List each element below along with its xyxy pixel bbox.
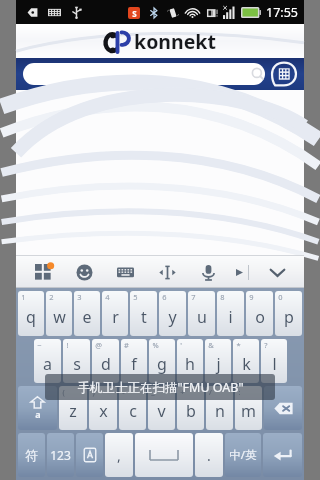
button[interactable]: 2 — [46, 291, 72, 336]
staticText: 3 — [77, 292, 82, 302]
staticText: s — [73, 353, 81, 375]
button[interactable]: - — [119, 386, 146, 430]
staticText: a — [43, 353, 52, 375]
staticText: & — [208, 340, 214, 350]
button[interactable]: + — [177, 386, 204, 430]
staticText: y — [168, 306, 177, 328]
staticText: g — [157, 353, 167, 375]
staticText: 123 — [50, 447, 71, 463]
button[interactable] — [23, 63, 265, 85]
button[interactable]: ( — [59, 386, 87, 430]
staticText: @ — [95, 340, 102, 350]
button[interactable]: Shift — [18, 386, 57, 430]
staticText: ? — [264, 340, 268, 350]
staticText: - — [122, 387, 125, 397]
staticText: r — [112, 306, 119, 328]
button[interactable]: 123 — [47, 433, 74, 477]
button[interactable]: ? — [261, 339, 287, 383]
button[interactable]: . — [195, 433, 223, 477]
staticText: p — [284, 306, 294, 328]
staticText: 7 — [191, 292, 196, 302]
button[interactable]: Move cursor — [154, 259, 180, 285]
staticText: u — [197, 306, 207, 328]
button[interactable]: 6 — [159, 291, 186, 336]
staticText: b — [186, 400, 196, 422]
staticText: x — [99, 400, 108, 422]
staticText: . — [207, 446, 211, 465]
staticText: 5 — [133, 292, 138, 302]
button[interactable]: ! — [63, 339, 90, 383]
button[interactable]: ) — [89, 386, 117, 430]
staticText: 8 — [220, 292, 225, 302]
button[interactable]: Emoji — [71, 259, 97, 285]
staticText: ~ — [37, 340, 42, 350]
button[interactable]: 9 — [246, 291, 273, 336]
button[interactable]: Space — [135, 433, 193, 477]
staticText: a — [35, 408, 41, 420]
staticText: m — [241, 400, 256, 422]
staticText: c — [129, 400, 137, 422]
staticText: 6 — [162, 292, 167, 302]
staticText: 符 — [25, 447, 38, 463]
button[interactable]: & — [205, 339, 231, 383]
button[interactable]: # — [121, 339, 147, 383]
button[interactable]: ~ — [34, 339, 61, 383]
staticText: S — [132, 8, 137, 19]
staticText: v — [157, 400, 166, 422]
staticText: ! — [66, 340, 69, 350]
button[interactable]: _ — [148, 386, 175, 430]
button[interactable]: 5 — [130, 291, 157, 336]
button[interactable]: Backspace — [264, 386, 302, 430]
button[interactable]: % — [149, 339, 175, 383]
staticText: % — [152, 340, 159, 350]
staticText: 17:55 — [266, 4, 298, 21]
button[interactable]: Enter — [263, 433, 302, 477]
button[interactable]: / — [206, 386, 233, 430]
staticText: ' — [180, 340, 182, 350]
staticText: w — [53, 306, 66, 328]
button[interactable]: 8 — [217, 291, 244, 336]
button[interactable]: Keyboard — [112, 259, 138, 285]
button[interactable]: 0 — [275, 291, 302, 336]
button[interactable]: 4 — [102, 291, 128, 336]
button[interactable]: 7 — [188, 291, 215, 336]
staticText: , — [117, 446, 121, 465]
staticText: d — [101, 353, 111, 375]
staticText: * — [236, 340, 241, 350]
staticText: 手机卫士正在扫描"FMU OAB" — [77, 379, 244, 396]
button[interactable]: 1 — [18, 291, 44, 336]
staticText: ( — [62, 387, 65, 397]
staticText: 9 — [249, 292, 254, 302]
staticText: o — [255, 306, 265, 328]
button[interactable]: * — [233, 339, 259, 383]
button[interactable]: Hide keyboard — [264, 259, 290, 285]
staticText: 4 — [105, 292, 110, 302]
staticText: h — [185, 353, 195, 375]
staticText: # — [124, 340, 129, 350]
staticText: 2 — [49, 292, 54, 302]
staticText: _ — [151, 387, 155, 397]
button[interactable]: 符 — [18, 433, 45, 477]
button[interactable]: ' — [177, 339, 203, 383]
button[interactable]: Apps — [30, 259, 56, 285]
button[interactable]: @ — [92, 339, 119, 383]
staticText: + — [180, 387, 185, 397]
staticText: 0 — [278, 292, 283, 302]
staticText: konnekt — [134, 28, 216, 55]
staticText: e — [82, 306, 92, 328]
staticText: n — [215, 400, 225, 422]
button[interactable]: 3 — [74, 291, 100, 336]
staticText: l — [272, 353, 277, 375]
button[interactable]: , — [105, 433, 133, 477]
staticText: / — [209, 387, 212, 397]
staticText: ) — [92, 387, 95, 397]
button[interactable]: Voice input — [195, 259, 221, 285]
staticText: k — [242, 353, 251, 375]
button[interactable]: 中/英 — [225, 433, 261, 477]
staticText: t — [141, 306, 147, 328]
button[interactable]: : — [235, 386, 262, 430]
staticText: i — [228, 306, 233, 328]
button[interactable]: Dial pad — [271, 61, 297, 87]
button[interactable]: Input method — [76, 433, 103, 477]
staticText: 中/英 — [229, 447, 257, 463]
